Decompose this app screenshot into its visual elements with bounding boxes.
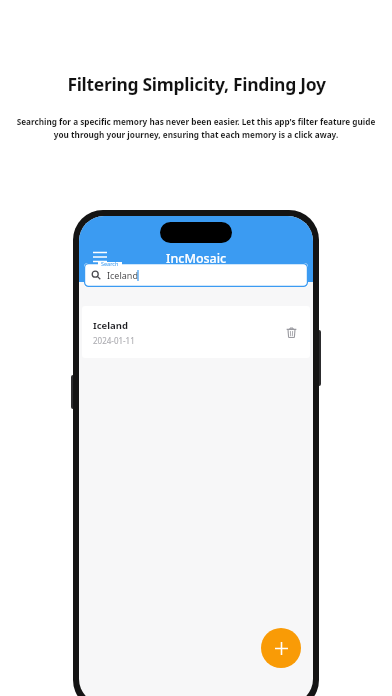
button[interactable] [84,263,308,287]
staticText: 2024-01-11 [93,335,135,346]
staticText: Iceland [107,269,138,281]
staticText: IncMosaic [166,250,227,267]
button[interactable]: Iceland [82,306,310,358]
staticText: Filtering Simplicity, Finding Joy [67,72,326,96]
staticText: Searching for a specific memory has neve… [10,116,382,141]
staticText: Iceland [93,319,128,332]
staticText: Search [101,260,119,267]
button[interactable]: Open navigation menu [87,244,113,270]
button[interactable]: Add memory [261,628,301,668]
button[interactable]: Delete Iceland [280,321,302,343]
